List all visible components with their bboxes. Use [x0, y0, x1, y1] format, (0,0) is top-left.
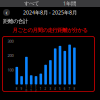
button[interactable]: 戻る — [3, 9, 10, 16]
staticText: 7 — [69, 87, 71, 91]
staticText: 1 — [40, 87, 42, 91]
staticText: 4 — [54, 87, 56, 91]
staticText: 300 — [7, 38, 13, 44]
staticText: 5 — [59, 87, 61, 91]
staticText: 11 — [30, 85, 32, 93]
staticText: すべて — [24, 0, 39, 7]
staticText: 100 — [7, 67, 13, 72]
staticText: 6 — [64, 87, 66, 91]
staticText: 9 — [21, 87, 23, 91]
staticText: 月ごとの月間の走行距離が分かる — [12, 27, 87, 34]
staticText: 1年間 — [63, 0, 76, 7]
staticText: 2 — [45, 87, 47, 91]
staticText: 8 — [16, 87, 18, 91]
staticText: ‹ — [5, 8, 7, 17]
staticText: 12 — [35, 85, 37, 93]
staticText: 距離の合計 — [3, 18, 28, 25]
staticText: 2024年8月 - 2025年8月 — [23, 9, 77, 16]
staticText: 10 — [25, 85, 27, 93]
staticText: 200 — [7, 53, 13, 58]
staticText: 3 — [49, 87, 51, 91]
staticText: 8 — [73, 87, 75, 91]
